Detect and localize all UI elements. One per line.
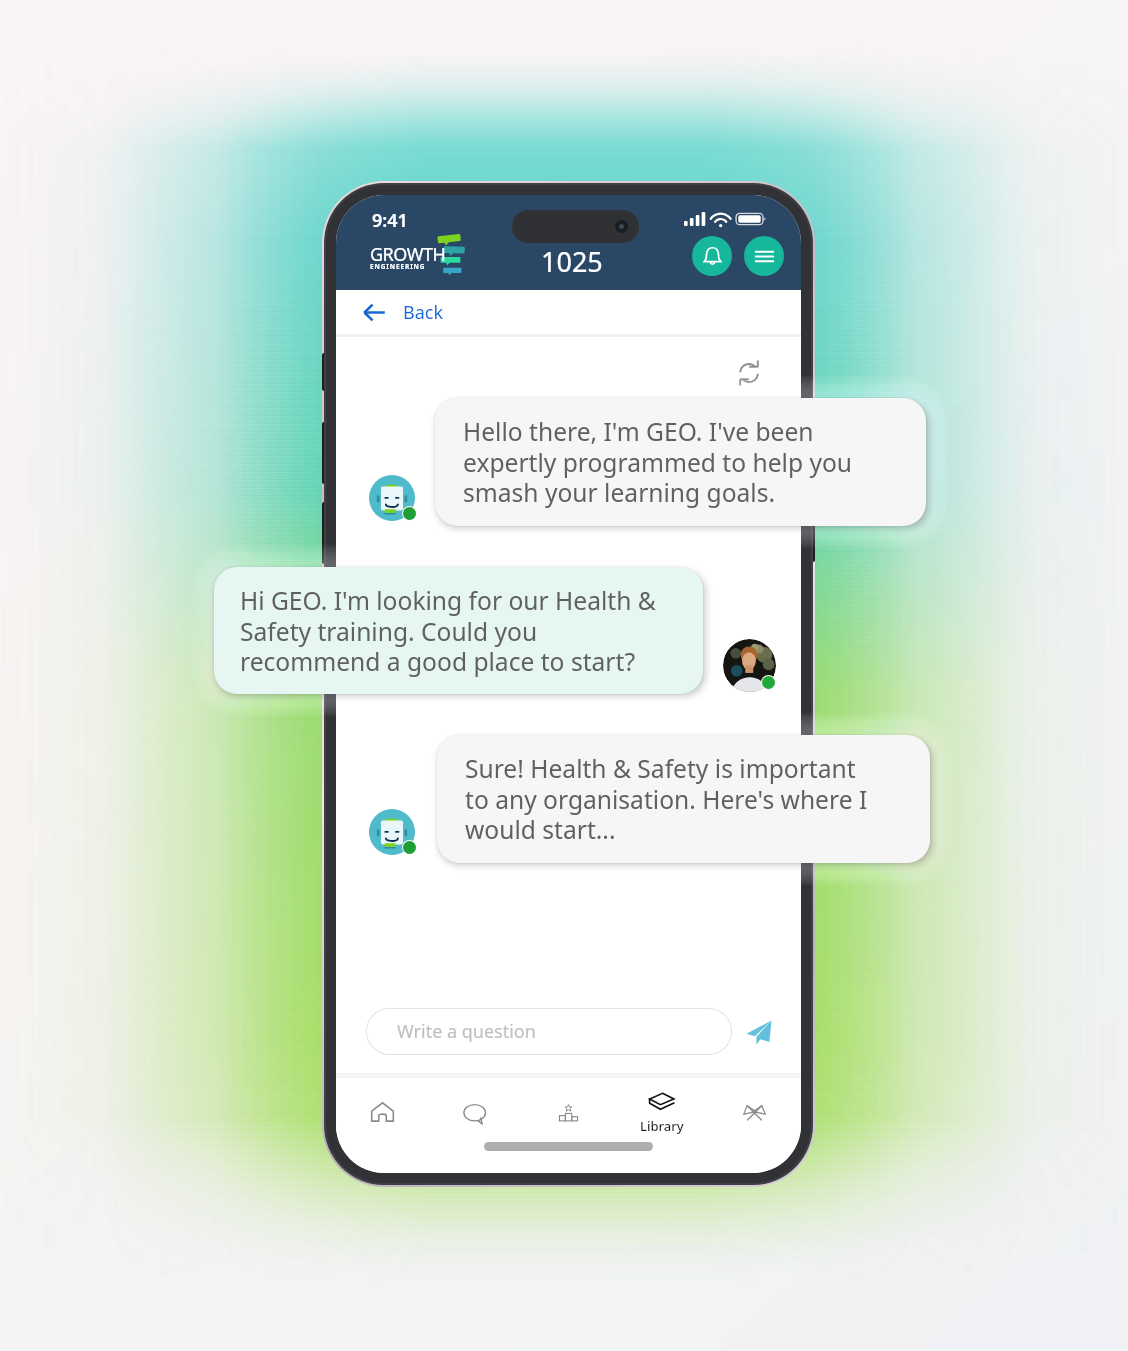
staticText: 9:41 — [372, 208, 408, 233]
button[interactable]: Hi GEO. I'm looking for our Health & Saf… — [214, 567, 703, 694]
button[interactable]: Library — [615, 1078, 708, 1134]
button[interactable]: Refresh — [731, 355, 767, 391]
staticText: 1025 — [541, 243, 603, 280]
button[interactable]: GROWTH — [370, 234, 462, 280]
button[interactable]: Battles — [708, 1078, 801, 1134]
staticText: Hello there, I'm GEO. I've been expertly… — [463, 415, 853, 509]
staticText: ENGINEERING — [370, 262, 426, 271]
staticText: Library — [640, 1117, 684, 1135]
button[interactable]: Hello there, I'm GEO. I've been expertly… — [435, 398, 926, 526]
staticText: GROWTH — [370, 242, 446, 267]
staticText: Hi GEO. I'm looking for our Health & Saf… — [240, 584, 656, 678]
staticText: Back — [403, 300, 444, 325]
staticText: Write a question — [397, 1019, 536, 1044]
button[interactable]: Leaderboard — [522, 1078, 615, 1134]
button[interactable]: Send — [740, 1013, 778, 1051]
button[interactable]: Back — [336, 290, 801, 334]
button[interactable]: Chat — [429, 1078, 522, 1134]
button[interactable]: Menu — [744, 236, 784, 276]
button[interactable]: Sure! Health & Safety is important to an… — [437, 735, 930, 863]
button[interactable]: Home — [336, 1078, 429, 1134]
staticText: Sure! Health & Safety is important to an… — [465, 752, 868, 846]
button[interactable]: Notifications — [692, 236, 732, 276]
button[interactable]: Write a question — [366, 1008, 732, 1055]
